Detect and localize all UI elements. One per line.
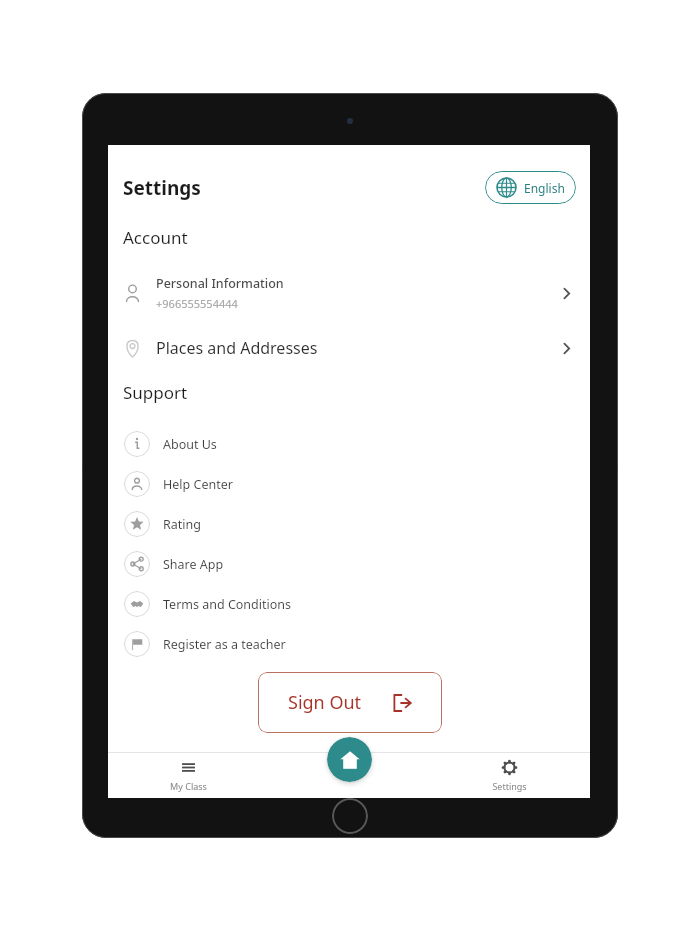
- button[interactable]: About Us: [108, 424, 590, 464]
- staticText: Help Center: [163, 476, 233, 493]
- staticText: Register as a teacher: [163, 636, 286, 653]
- staticText: Settings: [492, 780, 527, 792]
- staticText: My Class: [170, 780, 207, 792]
- button[interactable]: English: [485, 171, 576, 204]
- button[interactable]: My Class: [108, 753, 268, 798]
- button[interactable]: Terms and Conditions: [108, 584, 590, 624]
- staticText: Settings: [123, 175, 201, 201]
- button[interactable]: Sign Out: [258, 672, 442, 733]
- button[interactable]: Register as a teacher: [108, 624, 590, 664]
- button[interactable]: Settings: [429, 753, 590, 798]
- button[interactable]: Rating: [108, 504, 590, 544]
- staticText: Terms and Conditions: [163, 596, 292, 613]
- staticText: Account: [123, 226, 188, 249]
- button[interactable]: Personal Information: [108, 271, 590, 315]
- button[interactable]: Share App: [108, 544, 590, 584]
- staticText: Support: [123, 381, 188, 404]
- staticText: Sign Out: [288, 690, 362, 715]
- staticText: Places and Addresses: [156, 337, 318, 359]
- button[interactable]: Help Center: [108, 464, 590, 504]
- staticText: English: [524, 180, 565, 196]
- button[interactable]: Home: [327, 737, 372, 782]
- button[interactable]: Places and Addresses: [108, 335, 590, 361]
- staticText: Share App: [163, 556, 224, 573]
- staticText: About Us: [163, 436, 217, 453]
- staticText: Rating: [163, 516, 201, 533]
- staticText: +966555554444: [156, 296, 238, 311]
- staticText: Personal Information: [156, 275, 284, 292]
